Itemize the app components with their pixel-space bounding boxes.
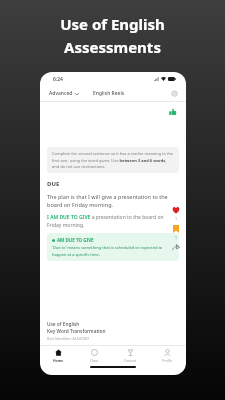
staticText: Contest <box>124 358 137 363</box>
staticText: Assessments <box>64 37 161 57</box>
staticText: The plan is that I will give a presentat… <box>47 193 179 209</box>
staticText: DUE <box>47 180 60 188</box>
button[interactable]: Share <box>170 242 182 254</box>
staticText: I AM DUE TO GIVE a presentation to the b… <box>47 214 179 228</box>
staticText: Class <box>90 358 99 363</box>
staticText: Advanced <box>49 90 73 97</box>
staticText: Complete the second sentence so it has a… <box>52 151 174 169</box>
button[interactable]: Class <box>76 346 112 366</box>
staticText: Profile <box>162 358 173 363</box>
staticText: Use of English <box>60 14 165 34</box>
button[interactable]: Advanced <box>47 89 81 98</box>
button[interactable]: Profile <box>149 346 186 366</box>
staticText: Home <box>53 358 64 363</box>
staticText: 'Due to' means something that is schedul… <box>52 245 174 257</box>
button[interactable]: Contest <box>112 346 149 366</box>
staticText: 1 <box>175 216 178 221</box>
staticText: Reel Identifier: AU045821 <box>47 336 90 341</box>
button[interactable]: English Reels <box>91 88 127 99</box>
staticText: 1 <box>175 235 178 240</box>
button[interactable]: AM DUE TO GIVE <box>47 233 179 261</box>
staticText: Key Word Transformation <box>47 328 106 335</box>
button[interactable]: Settings <box>170 89 179 98</box>
button[interactable]: Like <box>168 107 178 117</box>
button[interactable]: Bookmark <box>170 223 182 235</box>
button[interactable]: Favorite <box>170 204 182 216</box>
staticText: 6:24 <box>53 76 63 83</box>
staticText: AM DUE TO GIVE <box>57 237 94 243</box>
button[interactable]: Home <box>40 346 76 366</box>
staticText: Use of English <box>47 321 80 328</box>
